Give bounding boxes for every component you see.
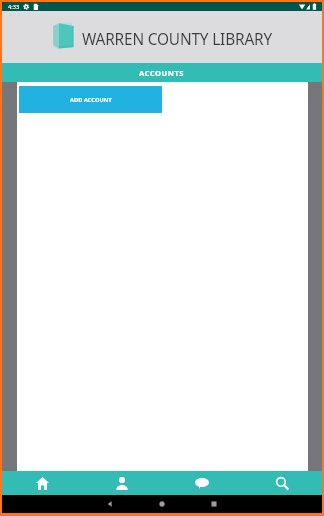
button[interactable]: Back: [84, 495, 136, 513]
staticText: ADD ACCOUNT: [70, 96, 112, 104]
button[interactable]: Home: [2, 471, 82, 495]
button[interactable]: Recents: [188, 495, 240, 513]
button[interactable]: Home: [136, 495, 188, 513]
staticText: ACCOUNTS: [139, 68, 185, 78]
button[interactable]: ADD ACCOUNT: [19, 86, 162, 113]
staticText: WARREN COUNTY LIBRARY: [82, 29, 272, 50]
button[interactable]: Search: [242, 471, 322, 495]
button[interactable]: Account: [82, 471, 162, 495]
button[interactable]: Messages: [162, 471, 242, 495]
staticText: 4:33: [8, 3, 20, 11]
